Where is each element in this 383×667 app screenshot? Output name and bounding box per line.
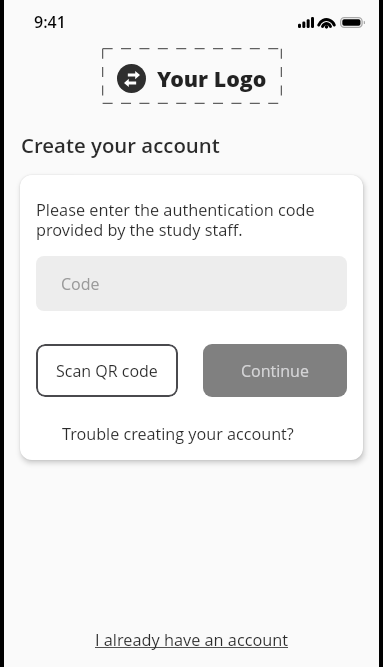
staticText: Continue (241, 360, 309, 382)
button[interactable]: Scan QR code (36, 344, 178, 397)
staticText: Your Logo (157, 64, 267, 93)
staticText: Scan QR code (56, 360, 158, 382)
button[interactable]: Trouble creating your account? (58, 419, 298, 449)
staticText: Create your account (21, 131, 220, 159)
staticText: Code (61, 273, 100, 295)
button[interactable]: Code (36, 256, 347, 311)
staticText: 9:41 (34, 11, 66, 33)
button[interactable]: Your Logo (102, 48, 282, 104)
button[interactable]: Continue (203, 344, 347, 397)
staticText: Please enter the authentication code pro… (36, 199, 347, 241)
button[interactable]: I already have an account (91, 625, 293, 655)
